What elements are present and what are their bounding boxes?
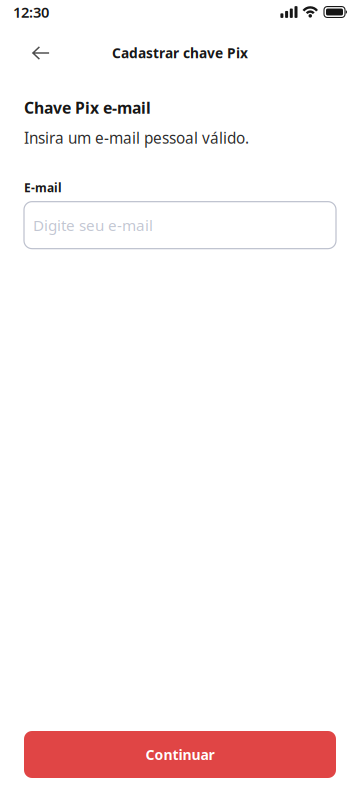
button[interactable]: Continuar <box>24 731 336 778</box>
staticText: 12:30 <box>13 2 49 22</box>
staticText: Continuar <box>145 745 214 764</box>
staticText: Insira um e-mail pessoal válido. <box>24 127 249 148</box>
button[interactable]: Voltar <box>21 34 61 72</box>
staticText: E-mail <box>24 179 62 196</box>
staticText: Cadastrar chave Pix <box>112 44 248 62</box>
staticText: Digite seu e-mail <box>33 215 153 235</box>
button[interactable]: Digite seu e-mail <box>24 202 336 249</box>
staticText: Chave Pix e-mail <box>24 97 151 118</box>
